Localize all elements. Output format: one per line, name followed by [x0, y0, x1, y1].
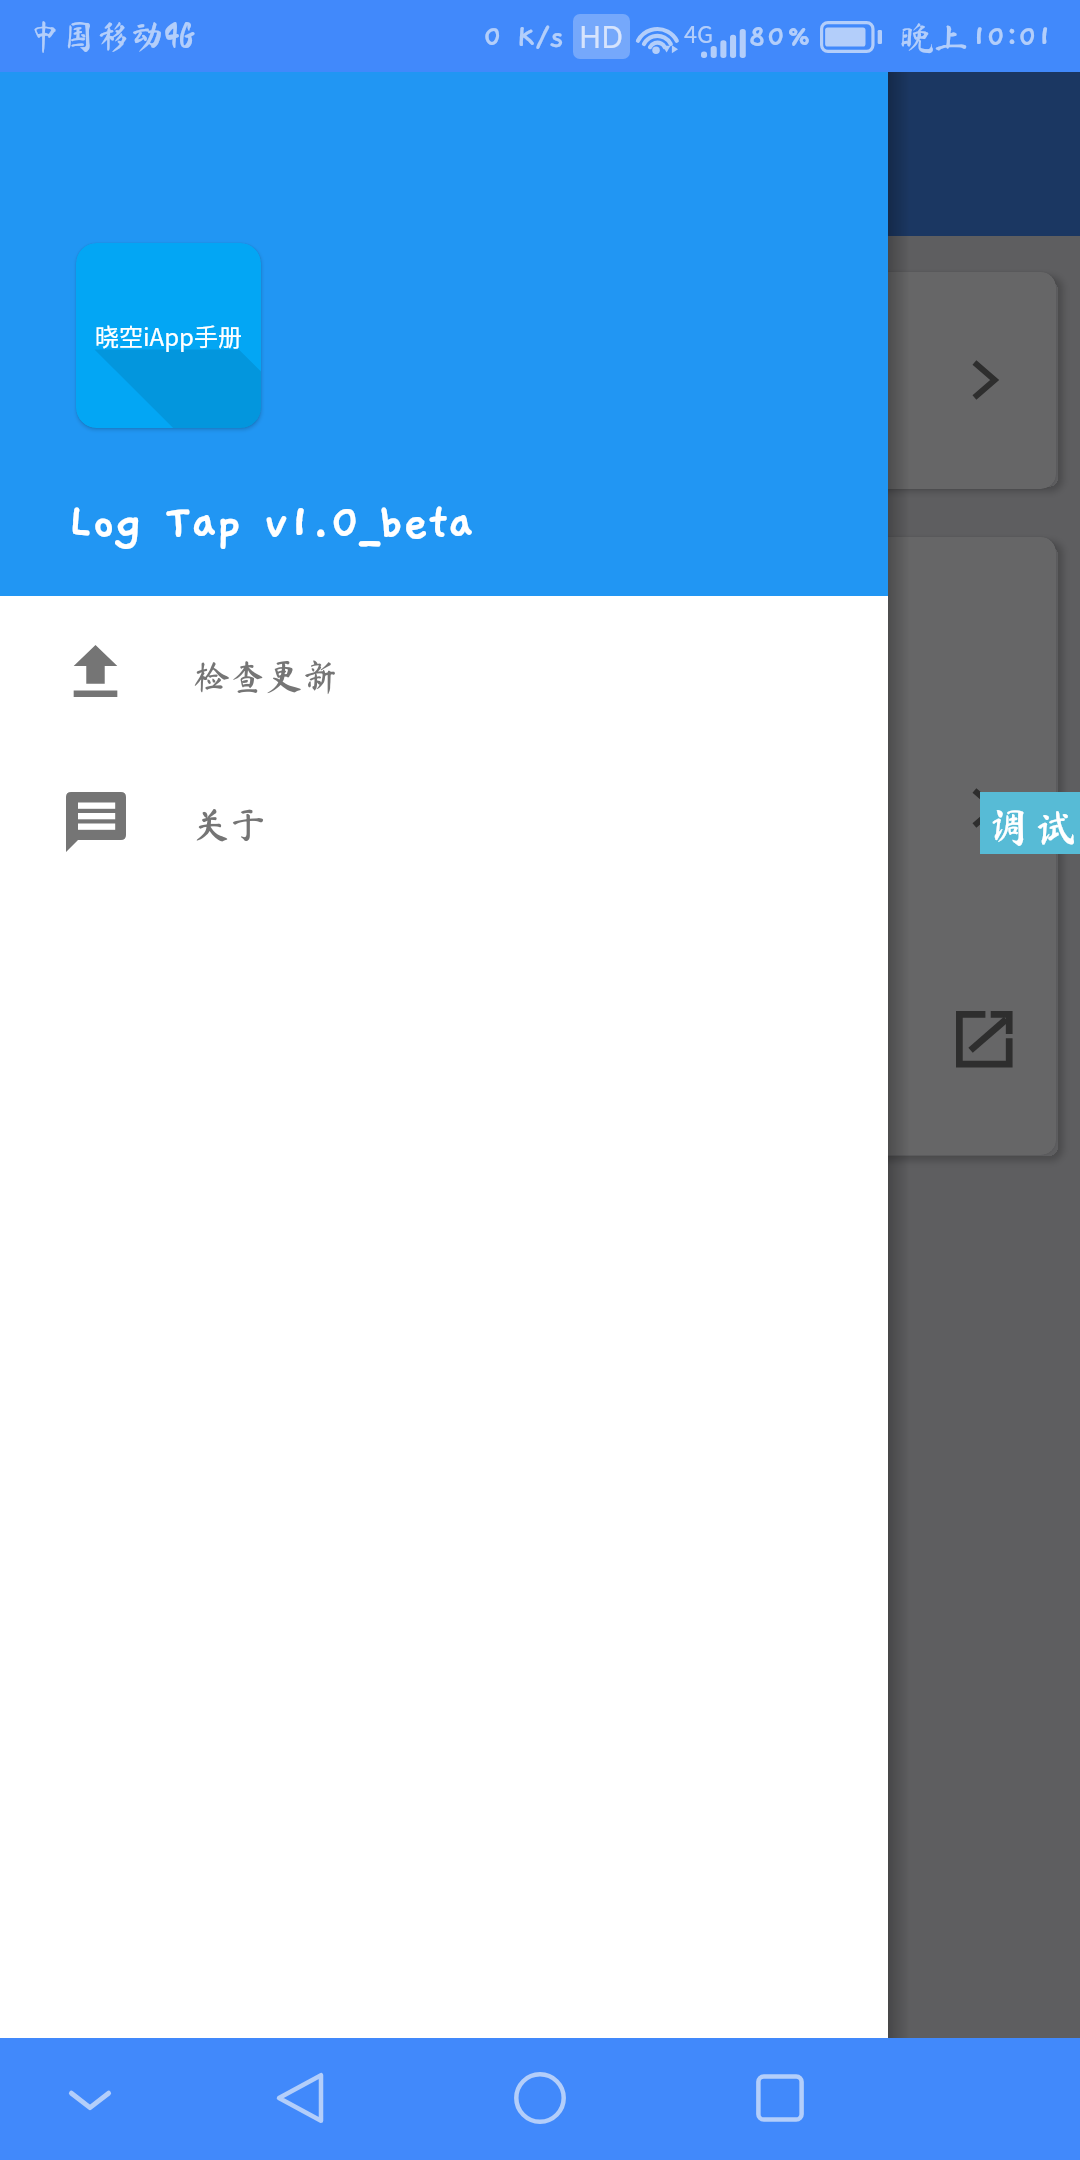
button[interactable]: 检查更新: [0, 596, 888, 744]
staticText: 晚上: [900, 20, 968, 54]
button[interactable]: Recent apps: [750, 2068, 810, 2128]
staticText: 关于: [194, 806, 267, 842]
button[interactable]: Home: [510, 2068, 570, 2128]
button[interactable]: 调试: [980, 792, 1080, 854]
staticText: 调试: [988, 807, 1080, 847]
staticText: Log Tap v1.0_beta: [68, 496, 473, 550]
staticText: 10:01: [972, 20, 1052, 54]
staticText: HD: [579, 16, 624, 57]
staticText: 中国移动4G: [28, 19, 195, 53]
button[interactable]: [24, 272, 1056, 489]
staticText: 晓空iApp手册: [95, 318, 242, 353]
staticText: 4G: [684, 16, 714, 50]
button[interactable]: Back: [270, 2068, 330, 2128]
other: Open in new window: [956, 1011, 1012, 1067]
button[interactable]: 关于: [0, 744, 888, 892]
button[interactable]: 晓空iApp手册: [76, 243, 261, 428]
button[interactable]: [24, 537, 1056, 1155]
staticText: 80%: [748, 20, 812, 54]
staticText: 0 K/s: [483, 20, 565, 54]
staticText: 检查更新: [194, 658, 339, 694]
button[interactable]: Hide keyboard: [60, 2068, 120, 2128]
